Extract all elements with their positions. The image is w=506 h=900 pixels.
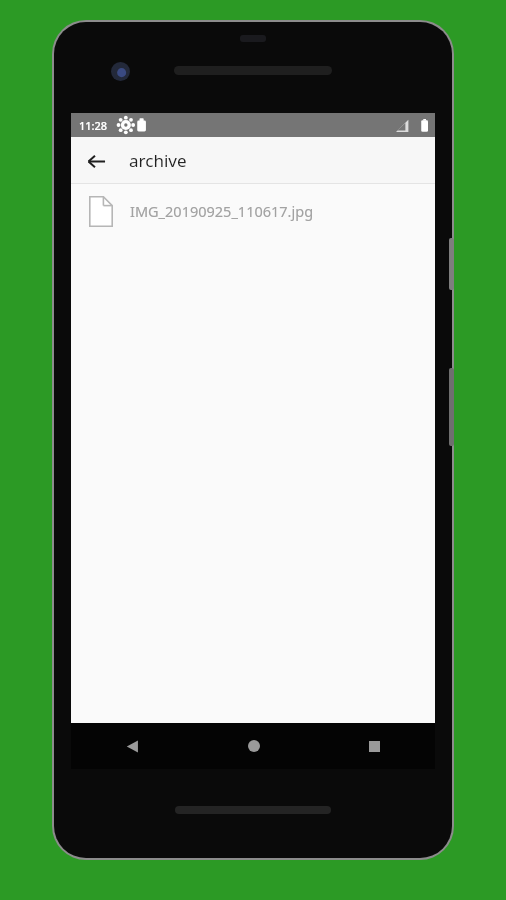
button[interactable]: IMG_20190925_110617.jpg — [71, 184, 435, 238]
staticText: archive — [129, 149, 187, 172]
staticText: 11:28 — [79, 118, 108, 133]
button[interactable]: Back — [71, 723, 193, 769]
button[interactable]: Home — [193, 723, 314, 769]
button[interactable]: Navigate up — [77, 142, 115, 180]
button[interactable]: Recent apps — [314, 723, 435, 769]
staticText: IMG_20190925_110617.jpg — [130, 201, 314, 221]
